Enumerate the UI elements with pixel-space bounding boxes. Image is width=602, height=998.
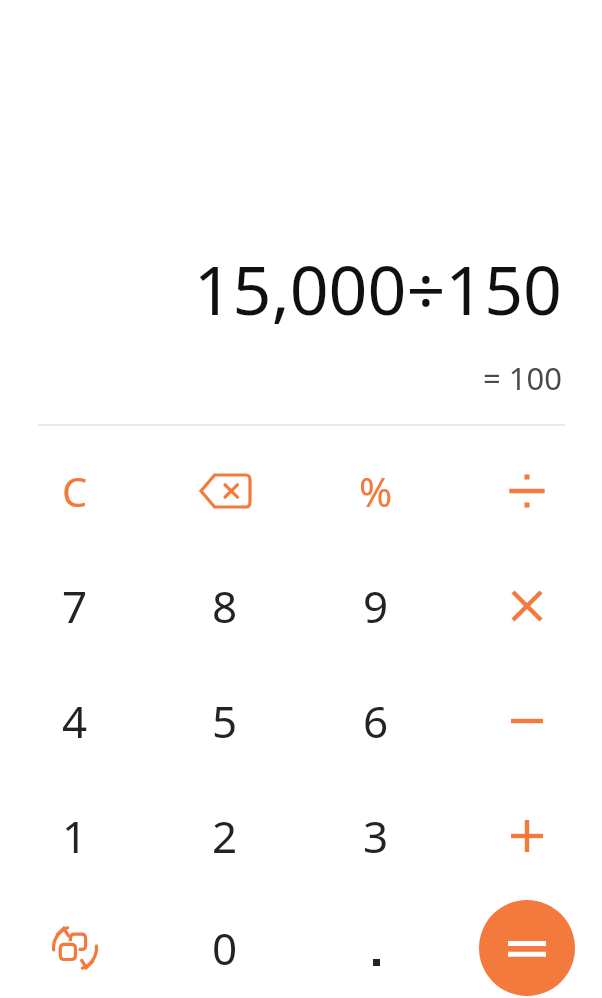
button[interactable]: Plus [472,781,582,891]
button[interactable]: % [321,436,431,546]
staticText: 15,000÷150 [193,242,562,335]
button[interactable]: Backspace [170,436,280,546]
button[interactable]: 1 [20,781,130,891]
staticText: 5 [212,691,238,751]
staticText: 4 [62,691,88,751]
button[interactable]: Minus [472,666,582,776]
button[interactable]: Unit converter [20,893,130,998]
button[interactable]: Divide [472,436,582,546]
staticText: C [62,464,88,518]
button[interactable]: 3 [321,781,431,891]
button[interactable]: 0 [170,893,280,998]
button[interactable]: Multiply [472,551,582,661]
button[interactable]: 7 [20,551,130,661]
button[interactable]: 6 [321,666,431,776]
staticText: 3 [363,806,389,866]
staticText: 6 [363,691,389,751]
staticText: = 100 [483,357,562,399]
staticText: 0 [212,918,238,978]
button[interactable]: 8 [170,551,280,661]
button[interactable]: 5 [170,666,280,776]
button[interactable]: 2 [170,781,280,891]
staticText: 9 [363,576,389,636]
staticText: 1 [62,806,88,866]
staticText: 8 [212,576,238,636]
staticText: % [359,464,393,518]
button[interactable]: Decimal point [321,893,431,998]
button[interactable]: 4 [20,666,130,776]
button[interactable]: C [20,436,130,546]
staticText: 2 [212,806,238,866]
button[interactable]: Equals [479,900,575,996]
staticText: 7 [62,576,88,636]
button[interactable]: 9 [321,551,431,661]
